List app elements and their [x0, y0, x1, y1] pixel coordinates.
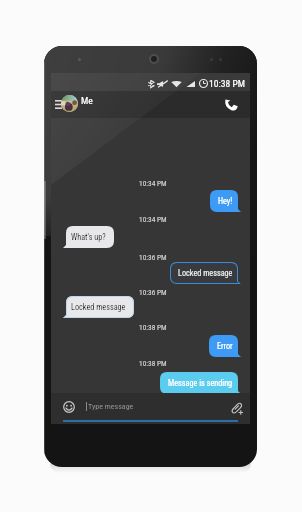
button[interactable]: Hey!: [210, 190, 241, 212]
staticText: Hey!: [218, 196, 233, 206]
staticText: Locked message: [178, 268, 233, 278]
staticText: Me: [81, 95, 93, 106]
staticText: 10:36 PM: [139, 288, 167, 297]
button[interactable]: What's up?: [63, 226, 114, 248]
staticText: What's up?: [71, 232, 106, 242]
staticText: 10:38 PM: [139, 323, 167, 332]
button[interactable]: Attach file: [229, 399, 244, 415]
staticText: 10:34 PM: [139, 179, 167, 188]
staticText: 10:34 PM: [139, 215, 167, 224]
button[interactable]: Locked message: [170, 262, 241, 284]
staticText: 10:38 PM: [139, 359, 167, 368]
staticText: Locked message: [71, 302, 126, 312]
button[interactable]: Insert emoji: [62, 400, 75, 413]
staticText: Type message: [88, 402, 134, 411]
button[interactable]: Error: [209, 335, 241, 357]
staticText: Error: [217, 341, 233, 351]
button[interactable]: Call: [220, 93, 242, 115]
staticText: Message is sending: [168, 378, 233, 388]
button[interactable]: Locked message: [63, 296, 134, 318]
button[interactable]: Open navigation drawer: [52, 95, 65, 114]
staticText: 10:38 PM: [209, 78, 245, 89]
button[interactable]: Message is sending: [160, 372, 241, 394]
staticText: 10:36 PM: [139, 253, 167, 262]
